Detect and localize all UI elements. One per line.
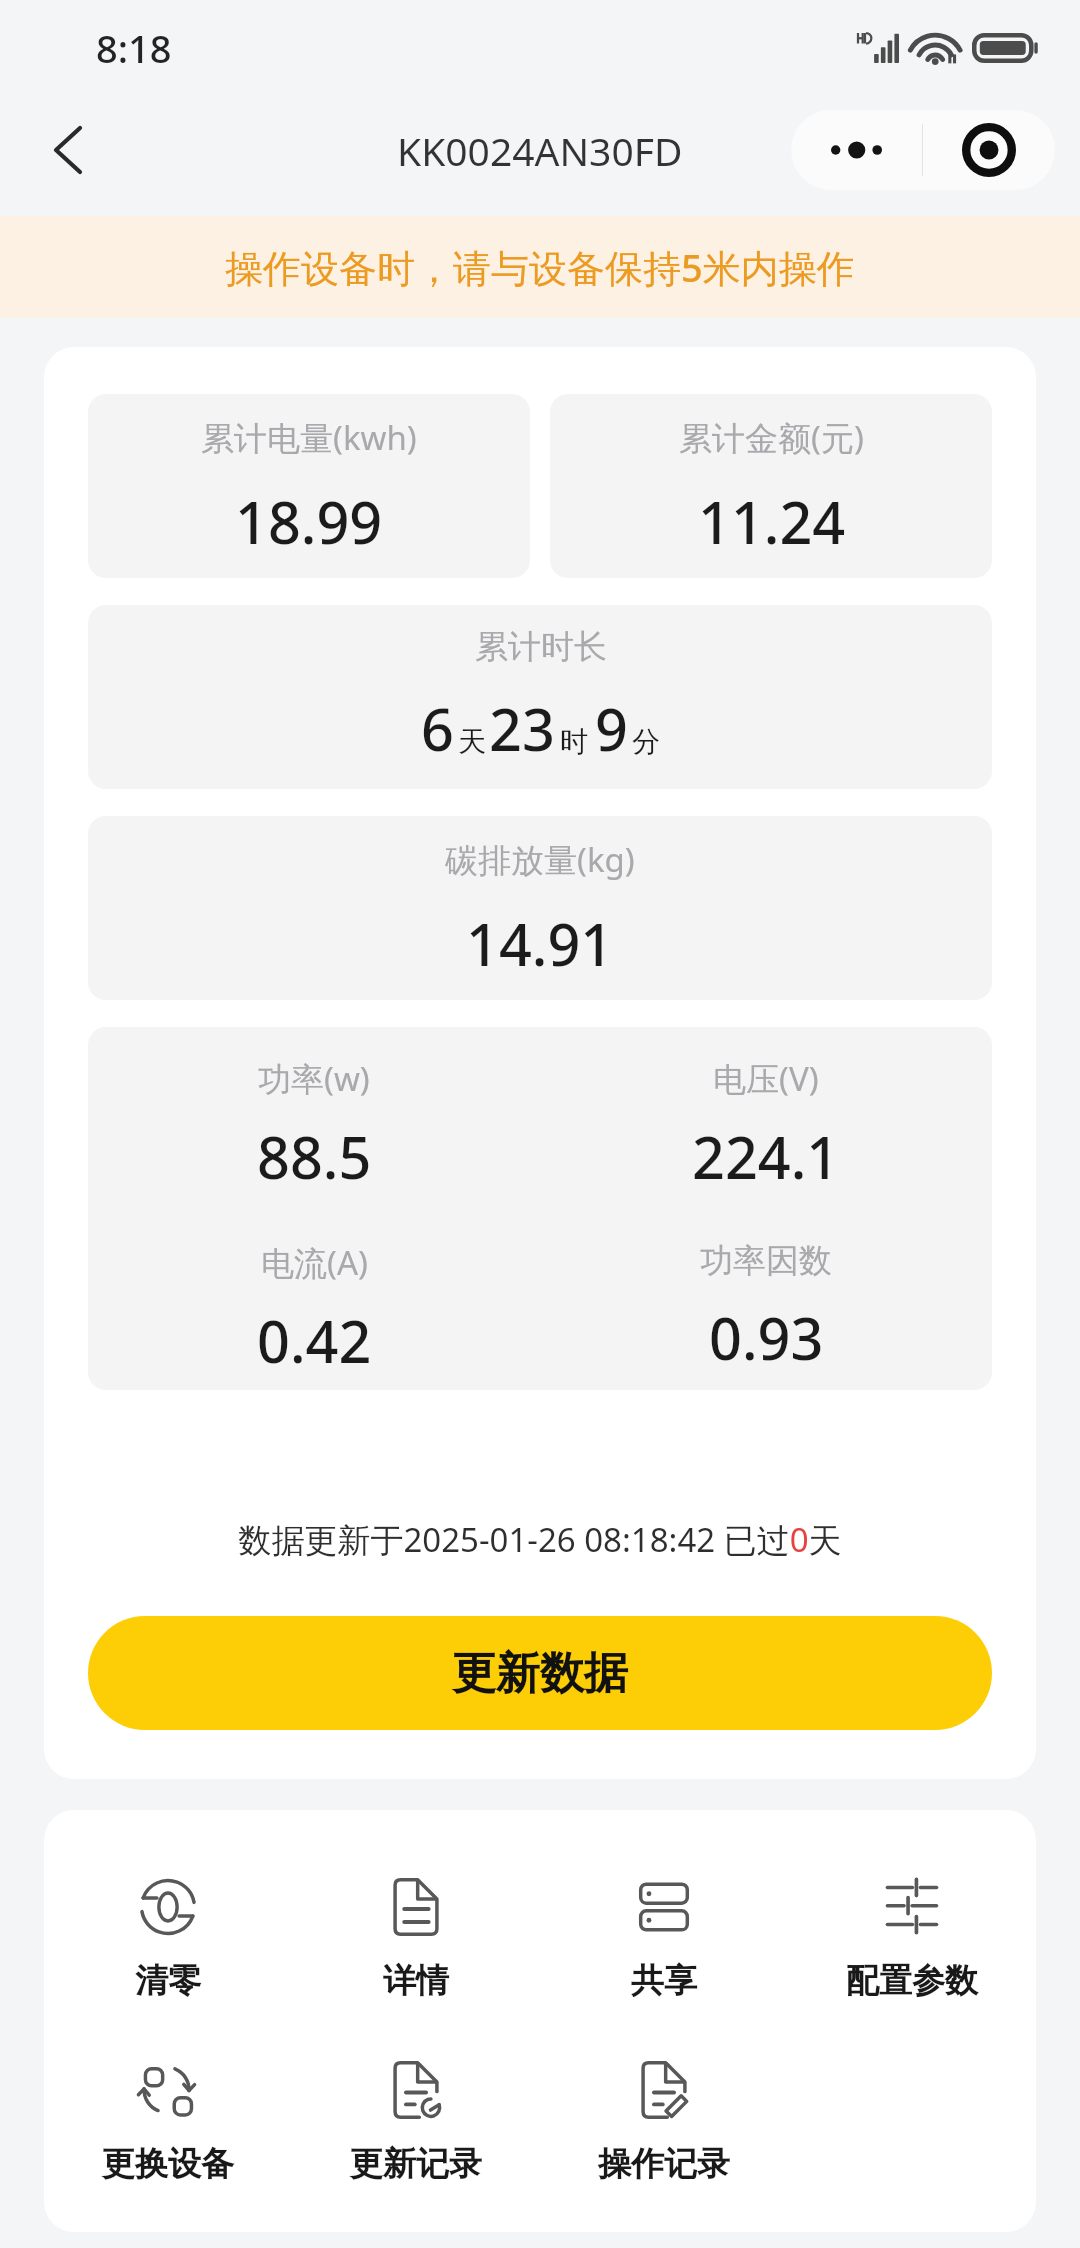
staticText: 8:18 [96,22,172,74]
staticText: 9 [595,690,628,768]
button[interactable]: 配置参数 [788,1877,1036,2002]
staticText: 电流(A) [261,1240,368,1285]
staticText: 电压(V) [713,1056,819,1101]
staticText: 224.1 [692,1118,840,1196]
staticText: 时 [560,724,588,759]
staticText: 18.99 [235,483,383,561]
button[interactable]: 共享 [540,1877,788,2002]
staticText: 数据更新于2025-01-26 08:18:42 已过0天 [88,1517,992,1562]
staticText: 累计金额(元) [679,415,864,460]
staticText: 88.5 [257,1118,372,1196]
button[interactable]: 清零 [44,1877,292,2002]
staticText: 清零 [135,1960,201,2002]
staticText: 配置参数 [846,1960,978,2002]
button[interactable]: 操作记录 [540,2060,788,2185]
staticText: 更换设备 [102,2143,234,2185]
button[interactable]: 更新数据 [88,1616,992,1730]
staticText: 6 [421,690,454,768]
staticText: 天 [458,724,486,759]
staticText: 0.42 [257,1302,372,1380]
staticText: 23 [489,690,555,768]
staticText: 共享 [631,1960,697,2002]
staticText: 分 [632,724,660,759]
staticText: 操作记录 [598,2143,730,2185]
staticText: 0.93 [709,1299,824,1377]
staticText: 累计电量(kwh) [201,415,417,460]
staticText: 操作设备时，请与设备保持5米内操作 [225,241,855,293]
button[interactable]: 更新记录 [292,2060,540,2185]
button[interactable]: Menu and close [791,110,1055,190]
staticText: KK0024AN30FD [397,124,683,177]
staticText: 功率(w) [258,1056,370,1101]
staticText: 更新数据 [452,1646,628,1701]
staticText: 功率因数 [700,1240,832,1282]
button[interactable]: 详情 [292,1877,540,2002]
staticText: 更新记录 [350,2143,482,2185]
staticText: 碳排放量(kg) [445,837,635,882]
staticText: 累计时长 [475,626,607,668]
staticText: 详情 [383,1960,449,2002]
button[interactable]: Back [24,106,112,194]
staticText: 14.91 [466,905,614,983]
button[interactable]: 更换设备 [44,2060,292,2185]
staticText: 11.24 [698,483,846,561]
